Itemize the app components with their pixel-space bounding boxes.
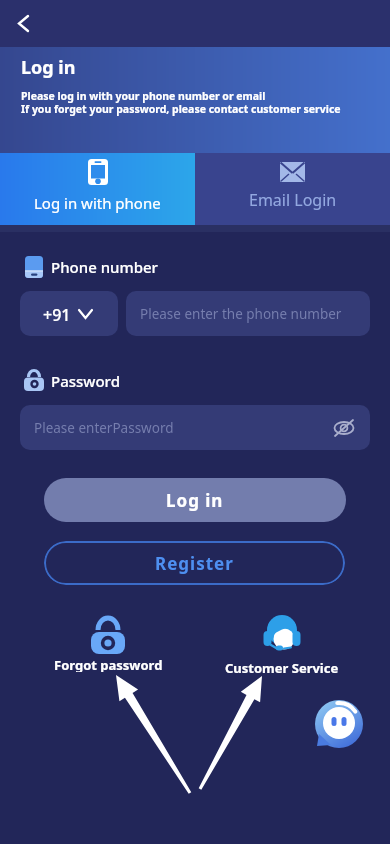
staticText: Email Login <box>249 189 337 211</box>
staticText: +91 <box>43 304 71 326</box>
button[interactable]: Email Login <box>195 153 390 225</box>
staticText: Register <box>155 552 234 575</box>
staticText: Log in <box>166 489 224 512</box>
button[interactable] <box>315 700 363 748</box>
staticText: Customer Service <box>225 659 339 674</box>
staticText: If you forget your password, please cont… <box>21 102 341 116</box>
staticText: Password <box>51 371 120 391</box>
button[interactable] <box>6 6 40 40</box>
staticText: Please enterPassword <box>34 419 174 437</box>
button[interactable]: Customer Service <box>212 614 352 674</box>
staticText: Phone number <box>51 257 158 277</box>
button[interactable]: Log in with phone <box>0 153 195 225</box>
staticText: Log in <box>21 55 76 80</box>
button[interactable]: Forgot password <box>38 610 178 672</box>
staticText: Please log in with your phone number or … <box>21 89 266 103</box>
button[interactable]: Please enterPassword <box>20 405 370 450</box>
staticText: Log in with phone <box>34 193 161 213</box>
staticText: Forgot password <box>54 656 163 672</box>
button[interactable]: +91 <box>20 291 118 336</box>
button[interactable]: Log in <box>44 478 346 522</box>
staticText: Please enter the phone number <box>140 305 342 323</box>
button[interactable]: Please enter the phone number <box>126 291 370 336</box>
button[interactable]: Register <box>44 541 345 585</box>
